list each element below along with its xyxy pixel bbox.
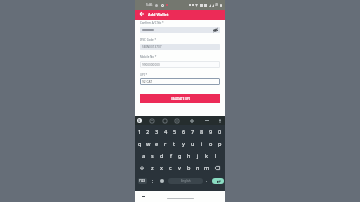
button[interactable]: Toggle password visibility [140,27,220,33]
button[interactable]: f [166,150,175,162]
button[interactable]: 5 [170,125,179,138]
button[interactable]: g [175,150,184,162]
staticText: d [160,152,164,160]
button[interactable]: Back [138,10,146,18]
button[interactable]: u [188,138,197,150]
button[interactable]: 3 [152,125,161,138]
button[interactable]: s [148,150,157,162]
staticText: m [204,164,210,172]
button[interactable]: w [144,138,152,150]
staticText: 5:46 [146,3,153,7]
button[interactable]: VALIDATE UPI [140,94,220,103]
staticText: IFSC Code * [140,38,156,42]
staticText: 5 [173,128,177,136]
staticText: 7 [191,128,195,136]
staticText: Mobile No * [140,55,157,59]
staticText: p [218,140,222,148]
staticText: e [155,140,159,148]
button[interactable]: 8 [197,125,206,138]
button[interactable]: y [179,138,188,150]
button[interactable]: k [202,150,211,162]
staticText: k [205,152,208,160]
staticText: s [151,152,154,160]
button[interactable]: 9 [206,125,215,138]
staticText: VALIDATE UPI [171,97,190,101]
button[interactable]: j [193,150,202,162]
button[interactable]: z [148,162,157,174]
button[interactable]: Stickers [174,118,179,123]
button[interactable]: 2 [144,125,152,138]
staticText: 9 [209,128,213,136]
button[interactable]: d [157,150,166,162]
staticText: 6 [182,128,186,136]
staticText: j [197,152,199,160]
button[interactable]: h [184,150,193,162]
button[interactable]: n [193,162,202,174]
button[interactable]: o [206,138,215,150]
button[interactable]: 6 [179,125,188,138]
staticText: 8 [200,128,204,136]
button[interactable]: c [166,162,175,174]
staticText: q [138,140,142,148]
button[interactable]: Emoji [151,180,154,183]
staticText: a [142,152,146,160]
button[interactable]: i [197,138,206,150]
staticText: 1 [138,128,142,136]
staticText: b [187,164,191,172]
button[interactable]: 92 CAT [140,78,220,85]
staticText: y [182,140,185,148]
staticText: 9900000000 [142,63,160,67]
button[interactable]: e [152,138,161,150]
button[interactable]: Voice input [217,118,222,123]
staticText: 4 [164,128,168,136]
staticText: ?123 [139,179,146,183]
button[interactable]: a [140,150,148,162]
staticText: 49 [215,3,219,7]
staticText: 0 [218,128,222,136]
staticText: Add Wallet [148,12,169,17]
button[interactable]: Google search [137,118,142,123]
button[interactable]: q [136,138,144,150]
button[interactable]: Change language [160,179,164,183]
staticText: Confirm A/C No * [140,21,164,25]
staticText: f [170,152,172,160]
staticText: o [209,140,213,148]
button[interactable]: Shift [136,162,148,174]
button[interactable]: Backspace [211,162,224,174]
staticText: u [191,140,195,148]
staticText: l [215,152,217,160]
staticText: 92 CAT [142,80,153,84]
button[interactable]: p [215,138,224,150]
button[interactable]: 9900000000 [140,61,220,68]
button[interactable]: t [170,138,179,150]
staticText: z [151,164,154,172]
button[interactable]: SBIN0013707 [140,44,220,50]
button[interactable]: x [157,162,166,174]
button[interactable]: r [161,138,170,150]
staticText: SBIN0013707 [142,45,162,49]
staticText: x [160,164,163,172]
button[interactable]: ?123 [138,178,147,184]
button[interactable]: More options [204,118,209,123]
button[interactable]: Settings [189,118,194,123]
staticText: r [164,140,167,148]
button[interactable]: 4 [161,125,170,138]
staticText: g [178,152,182,160]
staticText: English [181,179,191,183]
button[interactable]: 0 [215,125,224,138]
button[interactable]: GIF [162,118,167,123]
button[interactable]: v [175,162,184,174]
button[interactable]: m [202,162,211,174]
button[interactable]: Toggle password visibility [213,28,218,32]
staticText: c [169,164,172,172]
button[interactable]: English [168,178,203,184]
button[interactable]: Go [212,178,224,184]
button[interactable]: 1 [136,125,144,138]
button[interactable]: Emoji [149,118,154,123]
staticText: t [173,140,176,148]
button[interactable]: 7 [188,125,197,138]
staticText: h [187,152,191,160]
button[interactable]: b [184,162,193,174]
button[interactable]: l [211,150,220,162]
staticText: w [146,140,151,148]
